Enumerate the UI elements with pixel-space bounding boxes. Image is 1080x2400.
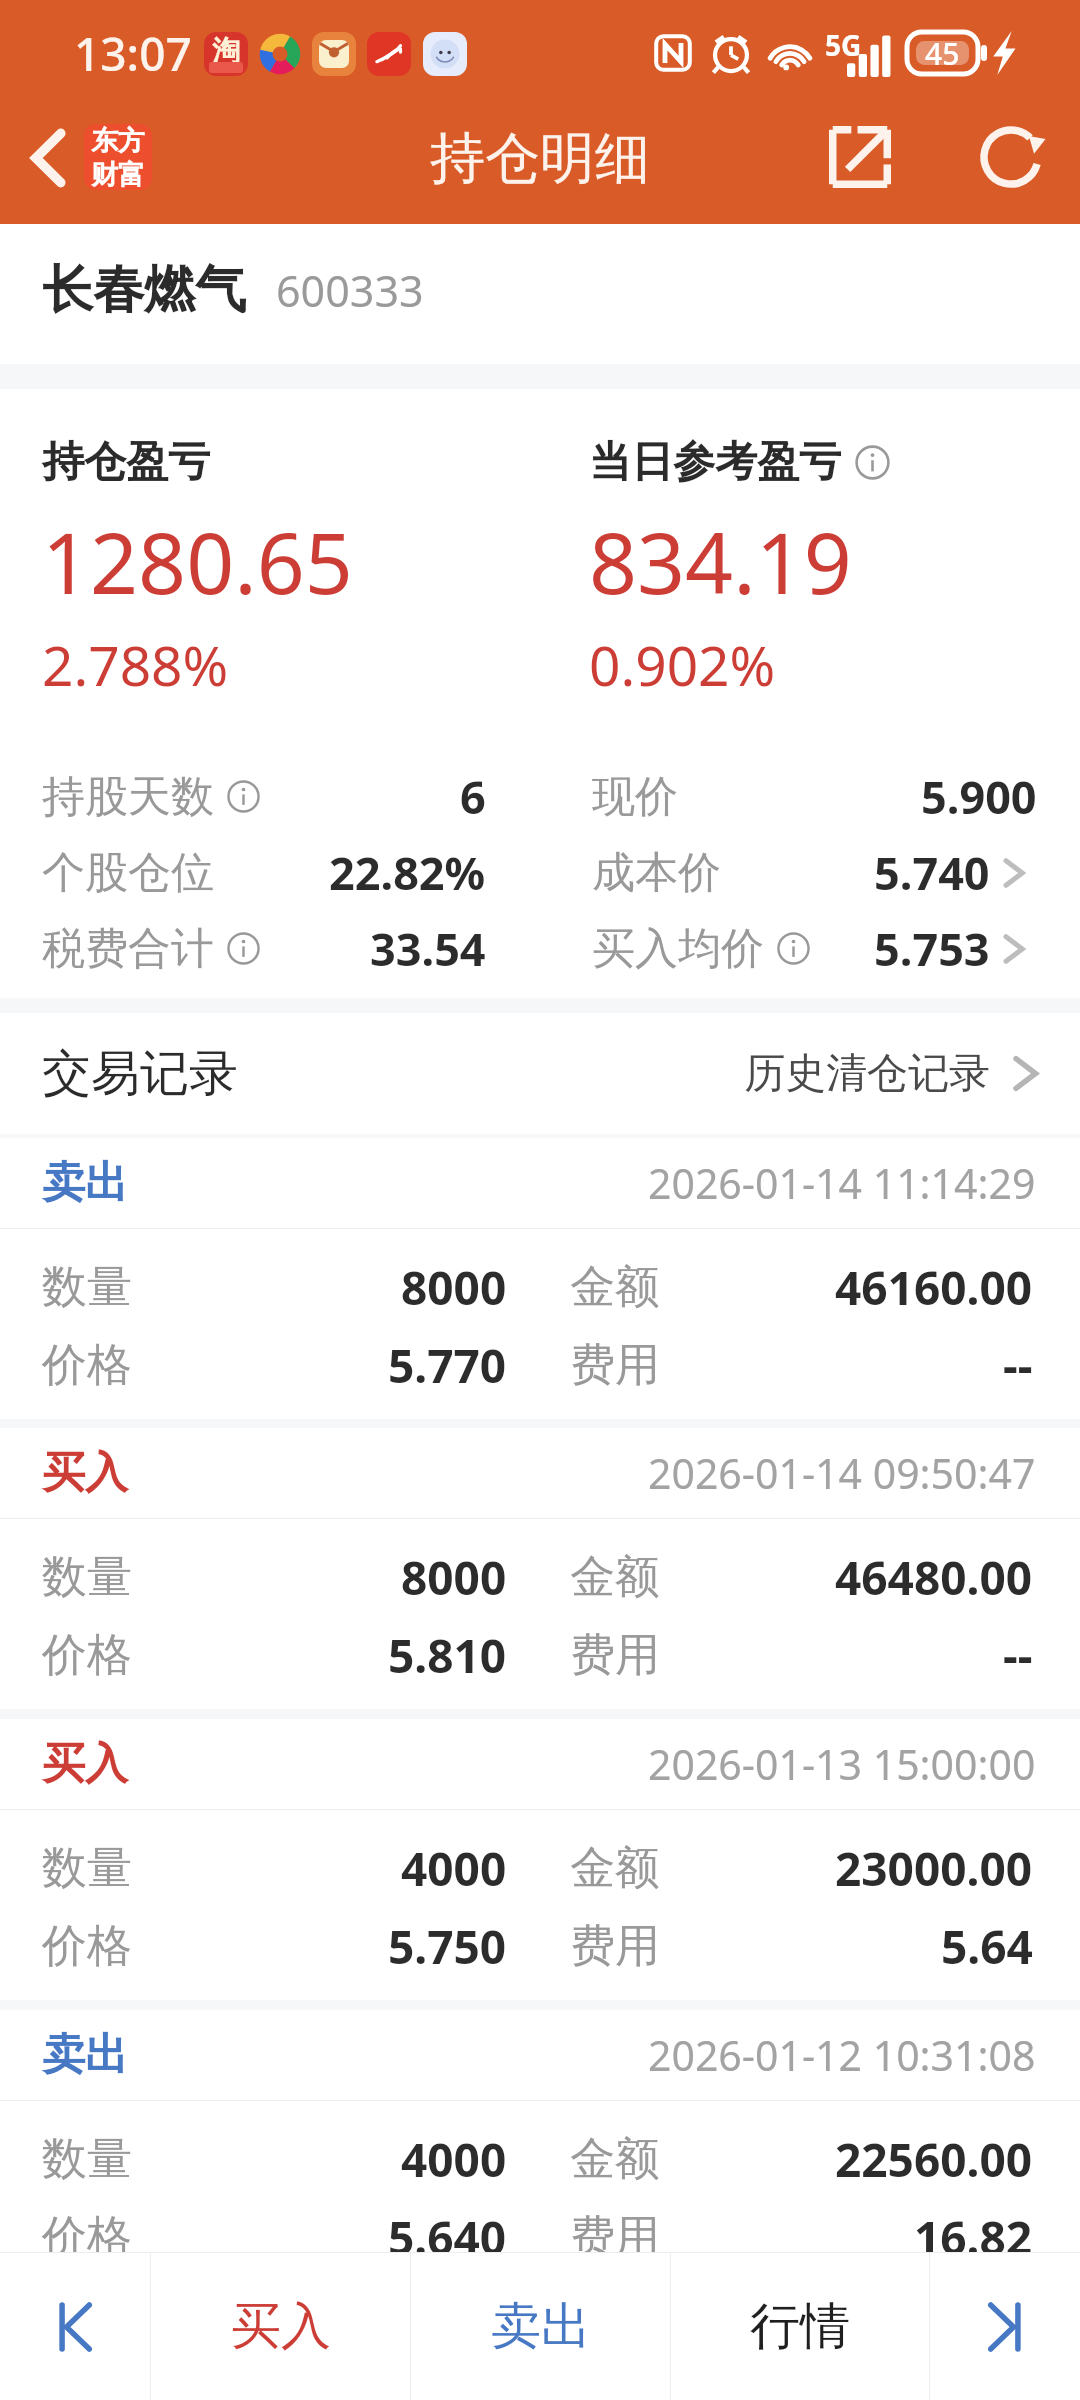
staticText: 买入 bbox=[42, 1737, 128, 1791]
staticText: 834.19 bbox=[589, 504, 852, 618]
staticText: 成本价 bbox=[592, 846, 721, 900]
staticText: 金额 bbox=[570, 2131, 660, 2188]
button[interactable]: 买入 bbox=[151, 2253, 410, 2400]
staticText: 数量 bbox=[42, 1549, 132, 1606]
staticText: 持股天数 bbox=[42, 770, 214, 824]
staticText: 5.740 bbox=[874, 842, 990, 903]
staticText: 0.902% bbox=[589, 627, 776, 702]
staticText: 16.82 bbox=[914, 2206, 1033, 2269]
staticText: -- bbox=[1003, 1624, 1033, 1687]
button[interactable]: First page bbox=[0, 2253, 150, 2400]
button[interactable]: 行情 bbox=[671, 2253, 929, 2400]
staticText: 数量 bbox=[42, 1840, 132, 1897]
staticText: 费用 bbox=[570, 1918, 660, 1975]
staticText: 费用 bbox=[570, 1337, 660, 1394]
staticText: 持仓盈亏 bbox=[42, 436, 210, 489]
staticText: 个股仓位 bbox=[42, 846, 214, 900]
staticText: 5G bbox=[825, 26, 862, 64]
staticText: 45 bbox=[925, 33, 960, 74]
staticText: 历史清仓记录 bbox=[744, 1048, 990, 1100]
staticText: 5.750 bbox=[388, 1915, 507, 1978]
staticText: -- bbox=[1003, 1334, 1033, 1397]
staticText: 当日参考盈亏 bbox=[589, 436, 841, 489]
staticText: 600333 bbox=[276, 261, 424, 320]
staticText: 46480.00 bbox=[835, 1546, 1033, 1609]
staticText: 5.770 bbox=[388, 1334, 507, 1397]
staticText: 数量 bbox=[42, 1259, 132, 1316]
staticText: 2026-01-13 15:00:00 bbox=[648, 1736, 1036, 1792]
staticText: 2026-01-14 11:14:29 bbox=[648, 1155, 1036, 1211]
staticText: 4000 bbox=[401, 1837, 507, 1900]
staticText: 税费合计 bbox=[42, 922, 214, 976]
staticText: 23000.00 bbox=[835, 1837, 1033, 1900]
button[interactable]: Refresh bbox=[959, 105, 1063, 209]
staticText: 价格 bbox=[42, 1337, 132, 1394]
staticText: 费用 bbox=[570, 2209, 660, 2266]
staticText: 交易记录 bbox=[42, 1043, 238, 1105]
staticText: 买入 bbox=[231, 2295, 331, 2358]
staticText: 金额 bbox=[570, 1259, 660, 1316]
staticText: 买入 bbox=[42, 1446, 128, 1500]
staticText: 5.753 bbox=[874, 918, 990, 979]
staticText: 2026-01-12 10:31:08 bbox=[648, 2027, 1036, 2083]
staticText: 5.810 bbox=[388, 1624, 507, 1687]
staticText: 4000 bbox=[401, 2128, 507, 2191]
staticText: 金额 bbox=[570, 1549, 660, 1606]
staticText: 13:07 bbox=[74, 22, 192, 85]
staticText: 财富 bbox=[91, 158, 145, 190]
staticText: 长春燃气 bbox=[42, 258, 246, 322]
staticText: 卖出 bbox=[42, 1156, 128, 1210]
staticText: 买入均价 bbox=[592, 922, 764, 976]
staticText: 持仓明细 bbox=[430, 124, 650, 193]
staticText: 1280.65 bbox=[42, 504, 353, 618]
staticText: 8000 bbox=[401, 1256, 507, 1319]
staticText: 46160.00 bbox=[835, 1256, 1033, 1319]
staticText: 现价 bbox=[592, 770, 678, 824]
button[interactable]: Back bbox=[0, 102, 96, 214]
staticText: 5.640 bbox=[388, 2206, 507, 2269]
staticText: 2026-01-14 09:50:47 bbox=[648, 1445, 1036, 1501]
staticText: 数量 bbox=[42, 2131, 132, 2188]
button[interactable]: 历史清仓记录 bbox=[744, 1047, 1040, 1100]
staticText: 费用 bbox=[570, 1627, 660, 1684]
staticText: 行情 bbox=[750, 2295, 850, 2358]
staticText: 2.788% bbox=[42, 627, 229, 702]
staticText: 22.82% bbox=[329, 842, 486, 903]
staticText: 5.64 bbox=[941, 1915, 1033, 1978]
staticText: 价格 bbox=[42, 2209, 132, 2266]
button[interactable]: Share bbox=[808, 105, 912, 209]
button[interactable]: 卖出 bbox=[411, 2253, 670, 2400]
staticText: 6 bbox=[460, 766, 486, 827]
staticText: 价格 bbox=[42, 1918, 132, 1975]
staticText: 淘 bbox=[212, 33, 240, 68]
staticText: 22560.00 bbox=[835, 2128, 1033, 2191]
staticText: 金额 bbox=[570, 1840, 660, 1897]
staticText: 东方 bbox=[91, 124, 145, 158]
staticText: 33.54 bbox=[370, 918, 486, 979]
button[interactable]: Last page bbox=[930, 2253, 1080, 2400]
staticText: 卖出 bbox=[491, 2295, 591, 2358]
staticText: 卖出 bbox=[42, 2028, 128, 2082]
staticText: 价格 bbox=[42, 1627, 132, 1684]
staticText: 8000 bbox=[401, 1546, 507, 1609]
staticText: 5.900 bbox=[921, 766, 1037, 827]
